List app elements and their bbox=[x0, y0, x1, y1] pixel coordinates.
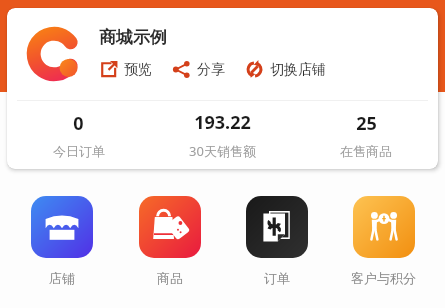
staticText: 切换店铺 bbox=[270, 61, 326, 79]
staticText: 订单 bbox=[264, 270, 290, 286]
button[interactable]: 分享 bbox=[172, 58, 225, 81]
staticText: 商城示例 bbox=[99, 27, 167, 48]
staticText: 分享 bbox=[197, 61, 225, 79]
button[interactable]: 切换店铺 bbox=[245, 58, 326, 81]
staticText: 商品 bbox=[157, 270, 183, 286]
staticText: 193.22 bbox=[194, 110, 251, 135]
button[interactable]: 25 bbox=[294, 101, 438, 169]
button[interactable]: 店铺 bbox=[8, 196, 116, 286]
staticText: 店铺 bbox=[49, 270, 75, 286]
staticText: 25 bbox=[356, 111, 377, 136]
staticText: 客户与积分 bbox=[351, 270, 416, 286]
button[interactable]: 0 bbox=[7, 101, 150, 169]
staticText: 30天销售额 bbox=[189, 142, 256, 160]
button[interactable]: 预览 bbox=[99, 58, 152, 81]
button[interactable]: 客户与积分 bbox=[330, 196, 437, 286]
staticText: 在售商品 bbox=[340, 143, 392, 159]
button[interactable]: 订单 bbox=[223, 196, 330, 286]
staticText: 预览 bbox=[124, 61, 152, 79]
button[interactable]: 商品 bbox=[116, 196, 223, 286]
staticText: 0 bbox=[73, 111, 84, 136]
button[interactable]: 193.22 bbox=[150, 101, 294, 169]
staticText: 今日订单 bbox=[53, 143, 105, 159]
